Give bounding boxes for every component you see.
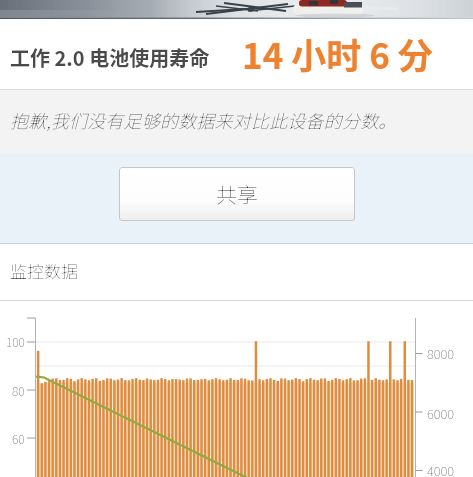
staticText: 监控数据: [10, 258, 78, 283]
staticText: 抱歉,我们没有足够的数据来对比此设备的分数。: [10, 107, 397, 133]
staticText: 8000: [427, 344, 455, 361]
staticText: 共享: [216, 179, 258, 209]
staticText: 14 小时 6 分: [242, 28, 433, 79]
staticText: 60: [12, 430, 25, 446]
staticText: 100: [6, 333, 25, 349]
staticText: 6000: [427, 404, 455, 421]
staticText: 4000: [427, 461, 455, 477]
staticText: 80: [12, 382, 25, 398]
button[interactable]: 共享: [119, 167, 355, 221]
staticText: 工作 2.0 电池使用寿命: [10, 43, 210, 72]
